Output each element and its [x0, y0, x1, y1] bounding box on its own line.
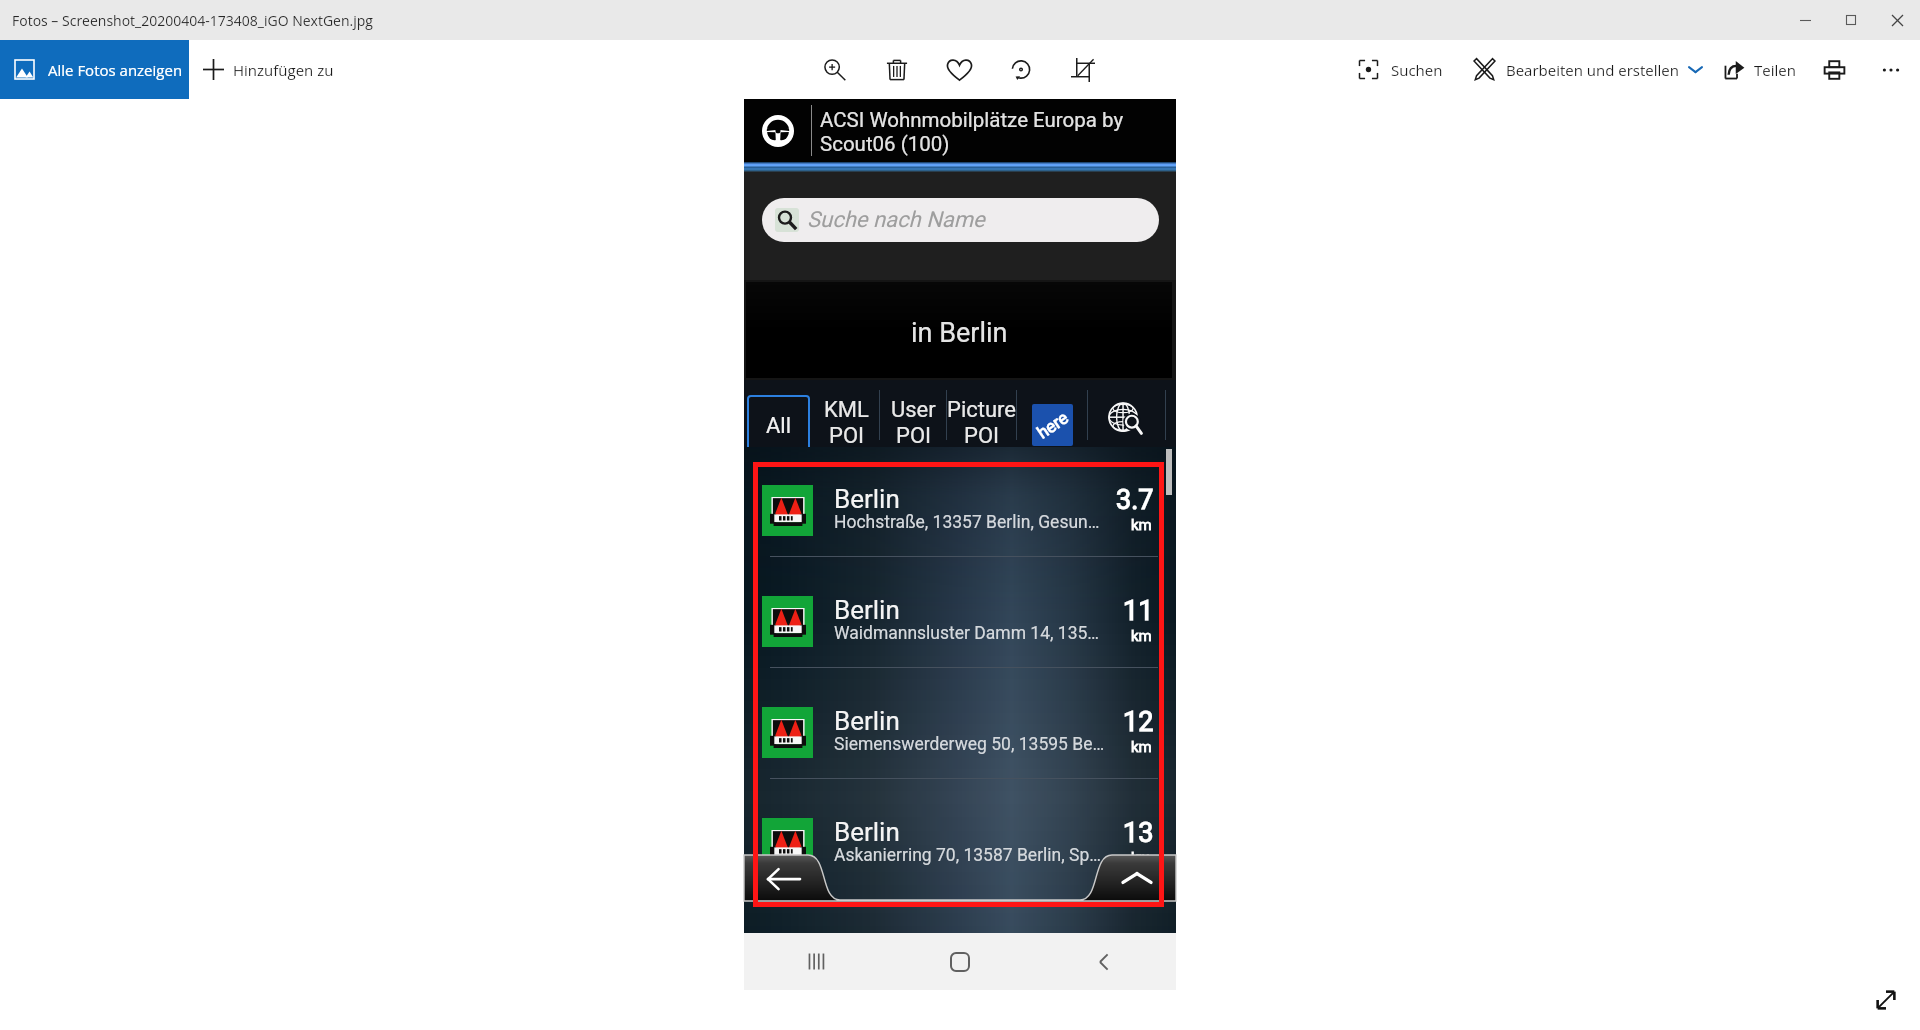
button[interactable]: Bearbeiten und erstellen — [1452, 40, 1712, 99]
staticText: Waidmannsluster Damm 14, 135… — [834, 623, 1100, 644]
button[interactable]: Print — [1806, 40, 1862, 99]
button[interactable]: Expand list — [1086, 855, 1176, 901]
button[interactable]: Back — [744, 855, 834, 901]
staticText: POI — [829, 423, 864, 449]
button[interactable]: Teilen — [1712, 40, 1806, 99]
staticText: km — [1131, 627, 1152, 645]
button[interactable]: Delete — [866, 40, 928, 99]
button[interactable]: Rotate — [990, 40, 1052, 99]
button[interactable]: KML — [813, 380, 879, 447]
button[interactable]: in Berlin — [746, 282, 1172, 378]
staticText: All — [766, 413, 792, 439]
staticText: Berlin — [834, 706, 900, 736]
staticText: Scout06 (100) — [820, 132, 950, 156]
staticText: Suche nach Name — [807, 207, 985, 233]
button[interactable]: Home — [888, 933, 1032, 990]
button[interactable]: Berlin — [744, 695, 1176, 777]
staticText: Alle Fotos anzeigen — [48, 60, 183, 80]
staticText: Berlin — [834, 817, 900, 847]
button[interactable]: Suche nach Name — [762, 198, 1159, 242]
staticText: User — [891, 397, 936, 423]
staticText: Hinzufügen zu — [233, 60, 334, 80]
staticText: POI — [896, 423, 931, 449]
button[interactable]: Recent apps — [744, 933, 888, 990]
staticText: Berlin — [834, 484, 900, 514]
staticText: km — [1131, 849, 1152, 867]
button[interactable]: Maximize — [1828, 0, 1874, 40]
staticText: here — [1033, 407, 1072, 442]
staticText: km — [1131, 516, 1152, 534]
staticText: Bearbeiten und erstellen — [1506, 60, 1679, 80]
button[interactable]: Suchen — [1320, 40, 1452, 99]
staticText: Berlin — [834, 595, 900, 625]
button[interactable]: Berlin — [744, 584, 1176, 666]
button[interactable]: Berlin — [744, 473, 1176, 555]
button[interactable]: User — [880, 380, 946, 447]
button[interactable]: Zoom — [804, 40, 866, 99]
staticText: 3.7 — [1116, 484, 1154, 516]
button[interactable]: More options — [1862, 40, 1920, 99]
staticText: Siemenswerderweg 50, 13595 Be… — [834, 734, 1105, 755]
button[interactable]: Crop — [1052, 40, 1114, 99]
staticText: ACSI Wohnmobilplätze Europa by — [820, 108, 1124, 132]
button[interactable]: Expand — [1864, 978, 1908, 1022]
button[interactable]: Berlin — [744, 806, 1176, 888]
button[interactable]: Close — [1874, 0, 1920, 40]
staticText: in Berlin — [911, 317, 1008, 349]
staticText: Picture — [947, 397, 1016, 423]
button[interactable]: Favorite — [928, 40, 990, 99]
button[interactable]: Hinzufügen zu — [193, 40, 344, 99]
staticText: 11 — [1123, 595, 1154, 627]
staticText: km — [1131, 738, 1152, 756]
button[interactable]: Alle Fotos anzeigen — [0, 40, 189, 99]
staticText: POI — [964, 423, 999, 449]
staticText: Teilen — [1754, 60, 1796, 80]
staticText: 13 — [1123, 817, 1154, 849]
button[interactable]: HERE maps — [1018, 380, 1087, 447]
staticText: KML — [824, 397, 869, 423]
button[interactable]: Minimize — [1782, 0, 1828, 40]
staticText: Fotos – Screenshot_20200404-173408_iGO N… — [12, 11, 373, 30]
button[interactable]: All — [747, 395, 810, 453]
staticText: Suchen — [1391, 60, 1443, 80]
button[interactable]: Back — [1032, 933, 1176, 990]
staticText: Hochstraße, 13357 Berlin, Gesun… — [834, 512, 1100, 533]
staticText: Askanierring 70, 13587 Berlin, Spa… — [834, 845, 1110, 866]
button[interactable]: Online search — [1089, 391, 1165, 447]
button[interactable]: Picture — [947, 380, 1016, 447]
staticText: 12 — [1123, 706, 1154, 738]
